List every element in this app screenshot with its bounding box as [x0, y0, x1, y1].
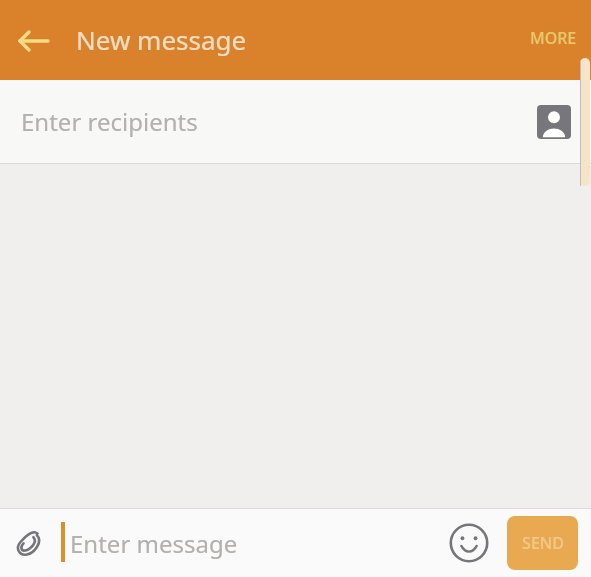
button[interactable]: SEND: [507, 516, 578, 570]
button[interactable]: Insert emoji: [445, 519, 493, 567]
button[interactable]: Back: [10, 17, 58, 65]
staticText: SEND: [522, 532, 564, 554]
staticText: New message: [76, 22, 247, 57]
button[interactable]: Attach: [6, 519, 54, 567]
button[interactable]: Enter recipients: [0, 80, 591, 163]
staticText: Enter message: [70, 527, 238, 560]
button[interactable]: MORE: [516, 17, 591, 59]
staticText: MORE: [530, 27, 577, 49]
button[interactable]: Choose contact: [535, 103, 573, 141]
staticText: Enter recipients: [21, 105, 198, 138]
